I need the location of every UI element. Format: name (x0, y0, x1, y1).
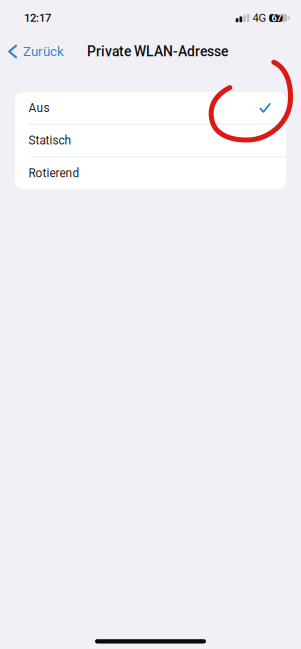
staticText: Zurück (23, 44, 64, 59)
staticText: 67 (272, 12, 282, 23)
button[interactable]: Aus (15, 92, 286, 124)
button[interactable]: Rotierend (15, 157, 286, 189)
staticText: 12:17 (24, 11, 51, 25)
button[interactable]: Zurück (0, 36, 69, 66)
staticText: 4G (252, 11, 266, 24)
staticText: Aus (29, 101, 50, 115)
staticText: Statisch (29, 134, 72, 147)
button[interactable]: Statisch (15, 125, 286, 156)
staticText: Rotierend (29, 166, 80, 180)
staticText: Private WLAN-Adresse (87, 43, 228, 60)
